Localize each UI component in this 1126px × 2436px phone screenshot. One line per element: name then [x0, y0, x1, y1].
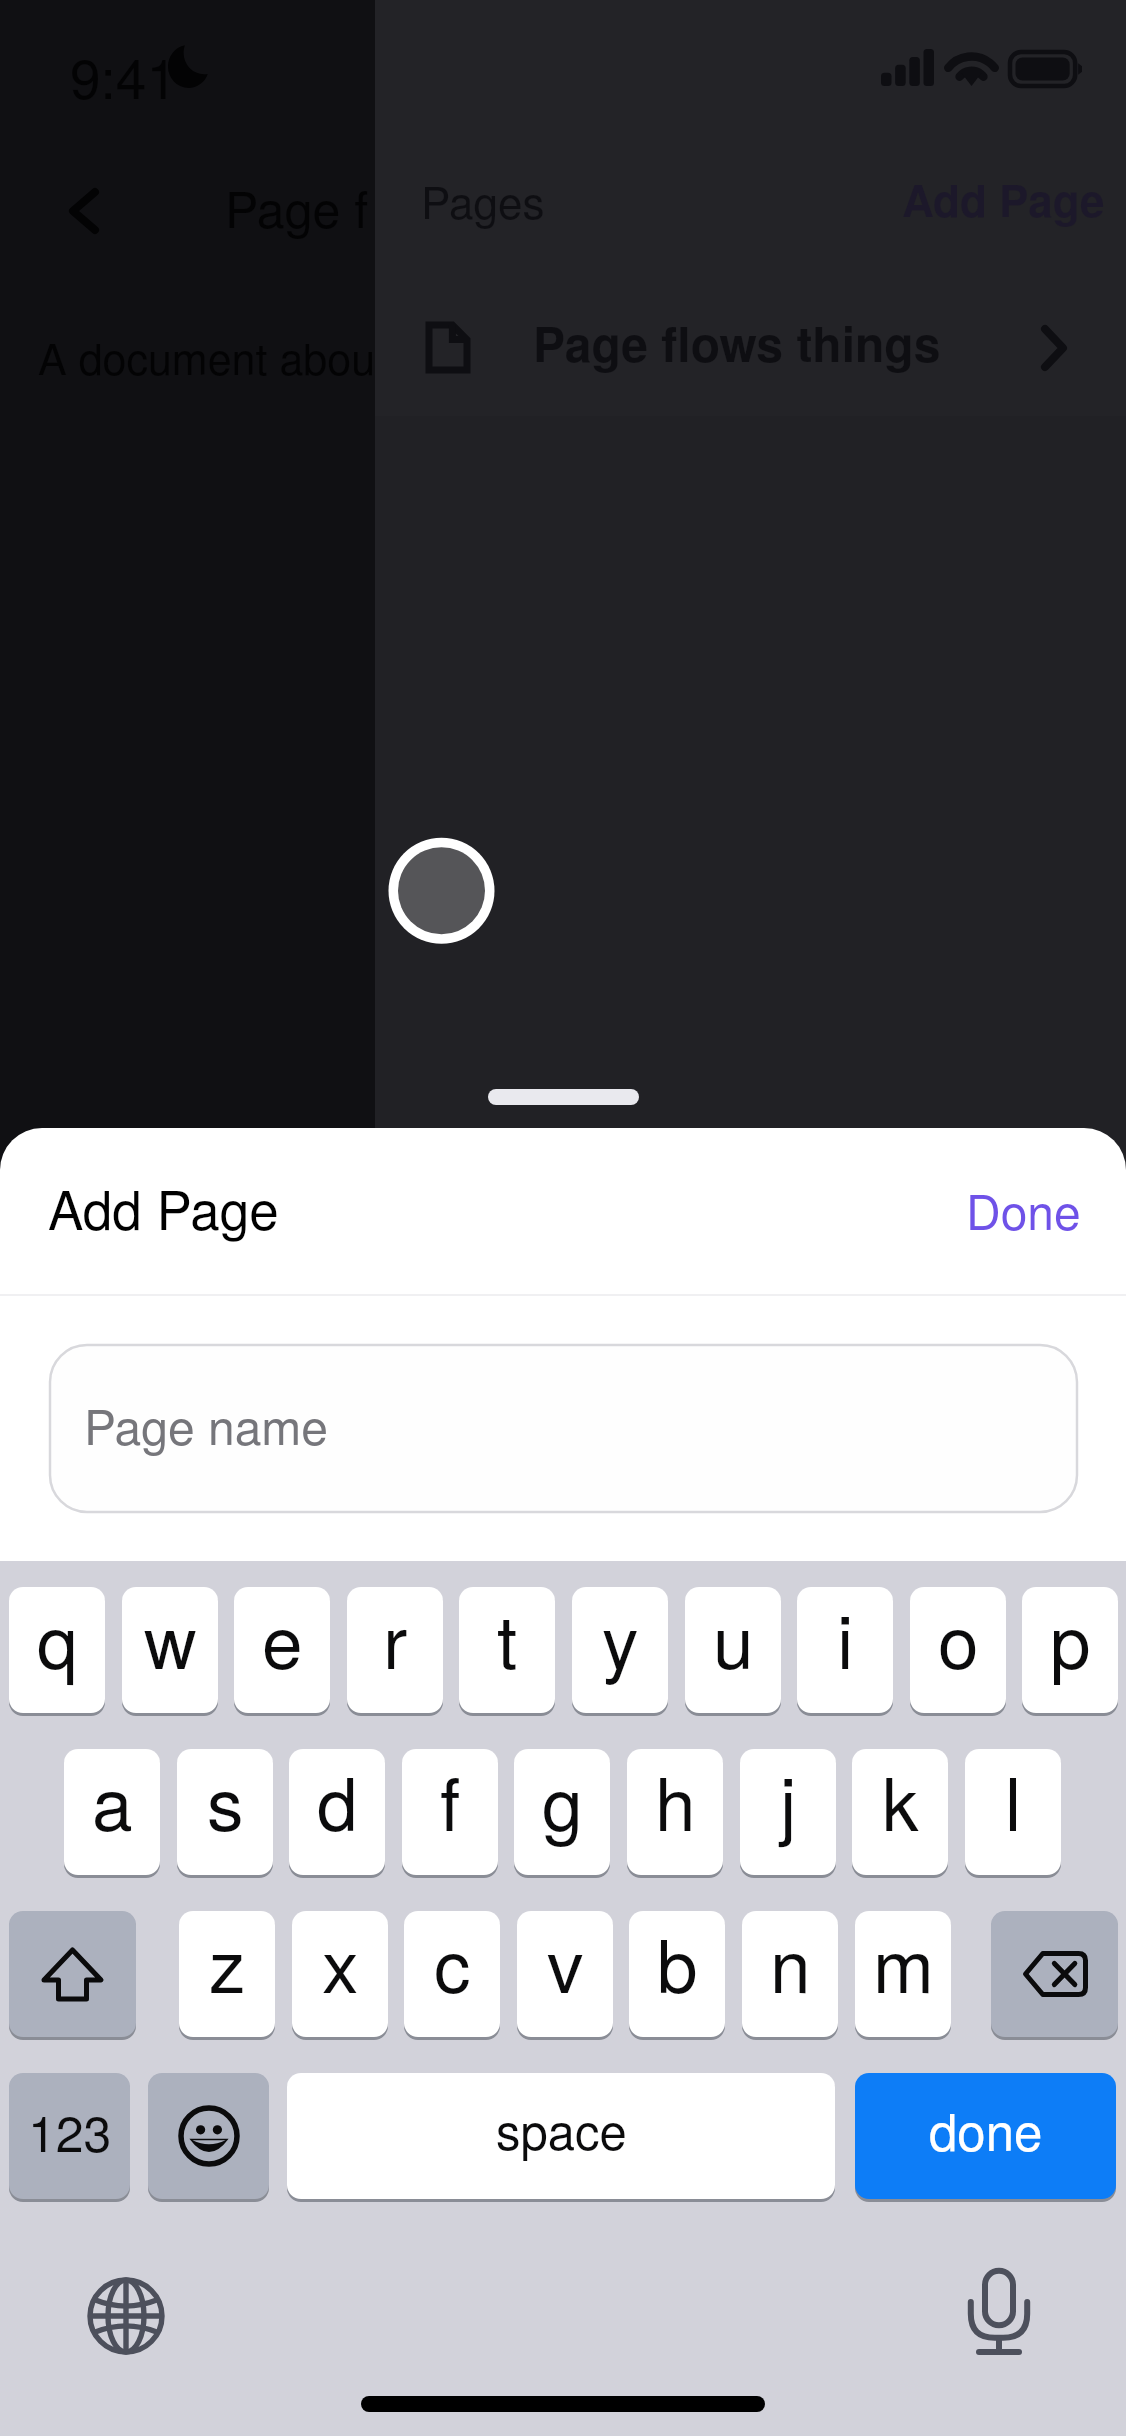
button[interactable]: d — [289, 1749, 385, 1875]
button[interactable]: Add Page — [880, 150, 1126, 247]
staticText: k — [882, 1749, 919, 1852]
staticText: A document abou — [38, 326, 376, 388]
button[interactable]: Change keyboard — [87, 2277, 165, 2355]
staticText: p — [1050, 1587, 1091, 1690]
button[interactable]: Page name — [50, 1345, 1077, 1512]
staticText: 123 — [28, 2095, 112, 2167]
staticText: w — [144, 1587, 197, 1690]
staticText: j — [780, 1749, 797, 1852]
button[interactable]: Page flows things — [375, 260, 1126, 416]
button[interactable]: space — [287, 2073, 835, 2199]
button[interactable]: y — [572, 1587, 668, 1713]
button[interactable]: f — [402, 1749, 498, 1875]
button[interactable]: Emoji — [148, 2073, 269, 2199]
button[interactable]: i — [797, 1587, 893, 1713]
button[interactable]: Add Page — [26, 1139, 301, 1275]
button[interactable]: x — [292, 1911, 388, 2037]
button[interactable]: j — [740, 1749, 836, 1875]
staticText: e — [262, 1587, 303, 1690]
button[interactable]: Backspace — [991, 1911, 1118, 2037]
staticText: done — [929, 2092, 1043, 2165]
staticText: space — [496, 2094, 627, 2164]
button[interactable]: l — [965, 1749, 1061, 1875]
button[interactable]: s — [177, 1749, 273, 1875]
button[interactable]: done — [855, 2073, 1116, 2199]
staticText: Done — [966, 1175, 1081, 1244]
staticText: Add Page — [48, 1169, 279, 1245]
staticText: Page f — [225, 171, 369, 243]
staticText: y — [602, 1587, 639, 1690]
button[interactable]: a — [64, 1749, 160, 1875]
staticText: Pages — [421, 168, 545, 231]
staticText: m — [873, 1911, 934, 2014]
button[interactable]: Back — [45, 165, 123, 257]
button[interactable]: t — [459, 1587, 555, 1713]
staticText: n — [770, 1911, 811, 2014]
button[interactable]: w — [122, 1587, 218, 1713]
button[interactable]: c — [404, 1911, 500, 2037]
button[interactable]: v — [517, 1911, 613, 2037]
button[interactable]: b — [629, 1911, 725, 2037]
staticText: o — [938, 1587, 979, 1690]
button[interactable]: k — [852, 1749, 948, 1875]
staticText: i — [837, 1587, 854, 1690]
button[interactable]: z — [179, 1911, 275, 2037]
staticText: f — [440, 1749, 461, 1852]
staticText: d — [317, 1749, 358, 1852]
button[interactable]: q — [9, 1587, 105, 1713]
button[interactable]: h — [627, 1749, 723, 1875]
button[interactable]: 123 — [9, 2073, 130, 2199]
button[interactable]: o — [910, 1587, 1006, 1713]
staticText: 9:41 — [70, 36, 178, 115]
staticText: g — [542, 1749, 583, 1852]
button[interactable]: Done — [938, 1145, 1109, 1274]
staticText: r — [383, 1587, 408, 1690]
button[interactable]: g — [514, 1749, 610, 1875]
staticText: x — [322, 1911, 359, 2014]
staticText: c — [434, 1911, 471, 2014]
staticText: h — [655, 1749, 696, 1852]
button[interactable]: Shift — [9, 1911, 136, 2037]
staticText: b — [657, 1911, 698, 2014]
button[interactable]: p — [1022, 1587, 1118, 1713]
button[interactable]: Dictation — [966, 2268, 1032, 2358]
staticText: Page name — [84, 1390, 329, 1459]
button[interactable]: r — [347, 1587, 443, 1713]
button[interactable]: e — [234, 1587, 330, 1713]
button[interactable]: n — [742, 1911, 838, 2037]
staticText: s — [207, 1749, 244, 1852]
button[interactable]: m — [855, 1911, 951, 2037]
staticText: l — [1005, 1749, 1022, 1852]
staticText: z — [209, 1911, 246, 2014]
staticText: Page flows things — [533, 308, 941, 377]
staticText: a — [92, 1749, 133, 1852]
staticText: q — [37, 1587, 78, 1690]
staticText: v — [547, 1911, 584, 2014]
staticText: t — [497, 1587, 518, 1690]
button[interactable]: u — [685, 1587, 781, 1713]
staticText: u — [713, 1587, 754, 1690]
staticText: Add Page — [902, 167, 1105, 230]
